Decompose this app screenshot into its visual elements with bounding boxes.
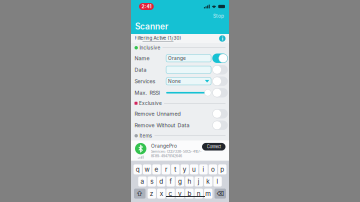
button[interactable]: d — [157, 176, 165, 186]
staticText: Remove Without Data — [134, 122, 189, 128]
staticText: o — [211, 165, 215, 173]
staticText: c — [169, 190, 173, 197]
staticText: i — [222, 35, 223, 42]
staticText: None — [168, 78, 181, 84]
staticText: t — [174, 165, 176, 173]
staticText: Max. RSSI — [134, 89, 159, 96]
button[interactable]: n — [195, 189, 203, 199]
button[interactable]: Remove Without Data — [131, 119, 229, 131]
button[interactable]: q — [133, 164, 142, 174]
staticText: y — [183, 165, 187, 173]
staticText: r — [165, 165, 167, 173]
button[interactable]: e — [152, 164, 161, 174]
button[interactable]: Name — [131, 52, 229, 64]
staticText: q — [136, 165, 140, 173]
button[interactable]: i — [199, 164, 208, 174]
button[interactable]: k — [204, 176, 212, 186]
button[interactable]: Remove Unnamed — [131, 108, 229, 119]
button[interactable]: j — [195, 176, 203, 186]
button[interactable]: Services — [131, 75, 229, 87]
staticText: d — [159, 178, 163, 185]
button[interactable]: r — [162, 164, 170, 174]
staticText: 2:41 — [141, 4, 151, 9]
staticText: j — [198, 178, 200, 185]
button[interactable]: u — [190, 164, 198, 174]
staticText: i — [202, 165, 204, 173]
staticText: h — [187, 178, 191, 185]
button[interactable]: c — [166, 189, 175, 199]
button[interactable]: h — [185, 176, 193, 186]
button[interactable]: Shift — [134, 189, 145, 199]
staticText: ⇧ — [136, 190, 143, 197]
button[interactable]: o — [209, 164, 217, 174]
button[interactable]: s — [148, 176, 156, 186]
staticText: p — [220, 165, 224, 173]
staticText: z — [150, 190, 154, 197]
staticText: Connect — [207, 144, 221, 149]
staticText: Scanner — [135, 21, 168, 32]
button[interactable]: g — [176, 176, 184, 186]
staticText: Stop — [213, 13, 224, 19]
staticText: Data — [134, 66, 146, 73]
staticText: n — [197, 190, 201, 197]
staticText: m — [205, 190, 211, 197]
button[interactable]: m — [204, 189, 212, 199]
staticText: 8F89-49479142646 — [151, 154, 182, 158]
staticText: ⌫ — [216, 190, 224, 197]
button[interactable]: x — [157, 189, 165, 199]
staticText: Remove Unnamed — [134, 110, 180, 117]
staticText: x — [160, 190, 163, 197]
button[interactable]: b — [185, 189, 193, 199]
button[interactable]: v — [176, 189, 184, 199]
staticText: b — [187, 190, 191, 197]
button[interactable]: z — [148, 189, 156, 199]
staticText: Services — [134, 78, 155, 84]
staticText: Name — [134, 55, 149, 61]
button[interactable]: a — [138, 176, 146, 186]
staticText: u — [192, 165, 196, 173]
staticText: Exclusive — [139, 100, 162, 106]
button[interactable]: w — [143, 164, 151, 174]
staticText: OrangePro — [151, 143, 177, 149]
staticText: g — [178, 178, 182, 185]
staticText: l — [217, 178, 219, 185]
button[interactable]: y — [180, 164, 189, 174]
button[interactable]: Stop — [212, 12, 225, 19]
staticText: e — [154, 165, 158, 173]
button[interactable]: t — [171, 164, 179, 174]
button[interactable]: Delete — [214, 189, 226, 199]
staticText: s — [150, 178, 153, 185]
staticText: f — [170, 178, 172, 185]
button[interactable]: Max. RSSI — [131, 87, 229, 98]
button[interactable]: Data — [131, 64, 229, 75]
staticText: Filtering Active (1/30) — [134, 35, 181, 41]
button[interactable]: l — [213, 176, 222, 186]
staticText: v — [178, 190, 182, 197]
staticText: w — [145, 165, 150, 173]
staticText: Services: CCD7338-50C5-4107- — [151, 149, 202, 153]
staticText: Items — [139, 133, 152, 139]
staticText: Orange — [168, 55, 186, 61]
staticText: a — [140, 178, 144, 185]
button[interactable]: f — [166, 176, 175, 186]
button[interactable]: OrangePro — [131, 140, 229, 160]
staticText: Inclusive — [139, 45, 160, 51]
button[interactable]: p — [218, 164, 226, 174]
button[interactable]: Filtering Active (1/30) — [131, 34, 229, 43]
staticText: k — [206, 178, 210, 185]
